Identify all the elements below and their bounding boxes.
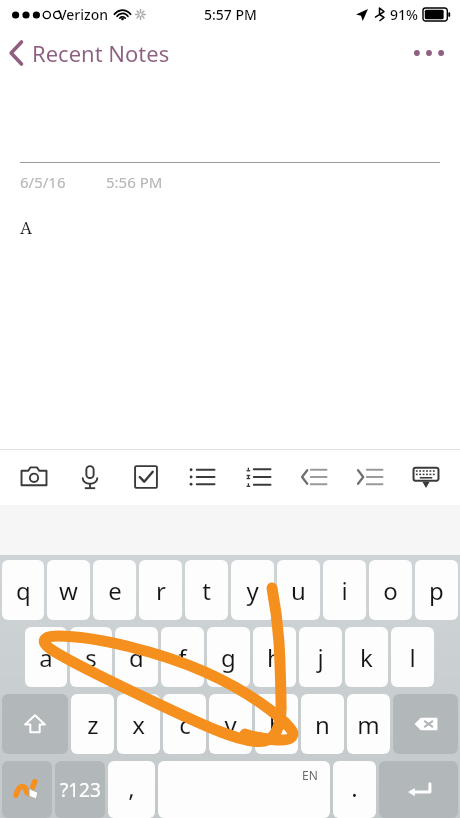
staticText: 5:57 PM: [204, 5, 257, 24]
button[interactable]: Numbered list: [238, 457, 278, 497]
button[interactable]: Handwriting: [2, 761, 52, 818]
button[interactable]: a: [25, 627, 67, 687]
button[interactable]: m: [347, 694, 390, 754]
button[interactable]: l: [391, 627, 434, 687]
button[interactable]: Hide keyboard: [406, 457, 446, 497]
button[interactable]: v: [209, 694, 252, 754]
staticText: b: [269, 708, 284, 741]
button[interactable]: c: [163, 694, 206, 754]
button[interactable]: z: [71, 694, 114, 754]
button[interactable]: h: [253, 627, 296, 687]
button[interactable]: Camera: [14, 457, 54, 497]
button[interactable]: Bulleted list: [182, 457, 222, 497]
staticText: a: [39, 641, 53, 674]
button[interactable]: p: [415, 560, 458, 620]
staticText: c: [179, 708, 191, 741]
staticText: .: [351, 771, 358, 804]
button[interactable]: d: [115, 627, 158, 687]
staticText: ,: [128, 771, 135, 804]
button[interactable]: t: [185, 560, 228, 620]
button[interactable]: k: [345, 627, 388, 687]
staticText: d: [129, 641, 144, 674]
staticText: p: [429, 574, 444, 607]
button[interactable]: Symbols: [55, 761, 105, 818]
button[interactable]: More options: [398, 36, 460, 70]
button[interactable]: ,: [108, 761, 155, 818]
button[interactable]: i: [323, 560, 366, 620]
staticText: q: [16, 574, 31, 607]
staticText: u: [291, 574, 306, 607]
staticText: r: [156, 574, 166, 607]
button[interactable]: Increase indent: [350, 457, 390, 497]
button[interactable]: f: [161, 627, 204, 687]
staticText: 5:56 PM: [106, 172, 163, 192]
staticText: t: [202, 574, 211, 607]
staticText: o: [383, 574, 398, 607]
button[interactable]: Space: [158, 761, 330, 818]
button[interactable]: e: [93, 560, 136, 620]
button[interactable]: w: [47, 560, 90, 620]
staticText: i: [341, 574, 348, 607]
button[interactable]: Shift: [2, 694, 68, 754]
staticText: j: [317, 641, 324, 674]
staticText: Recent Notes: [32, 38, 170, 68]
staticText: f: [178, 641, 187, 674]
button[interactable]: Checklist: [126, 457, 166, 497]
button[interactable]: x: [117, 694, 160, 754]
staticText: y: [246, 574, 259, 607]
button[interactable]: Voice note: [70, 457, 110, 497]
staticText: z: [87, 708, 99, 741]
staticText: x: [132, 708, 145, 741]
button[interactable]: o: [369, 560, 412, 620]
staticText: n: [315, 708, 330, 741]
staticText: A: [20, 216, 32, 239]
button[interactable]: Enter: [379, 761, 458, 818]
staticText: g: [221, 641, 236, 674]
button[interactable]: j: [299, 627, 342, 687]
button[interactable]: s: [70, 627, 112, 687]
staticText: 6/5/16: [20, 172, 66, 192]
button[interactable]: b: [255, 694, 298, 754]
button[interactable]: g: [207, 627, 250, 687]
button[interactable]: q: [2, 560, 44, 620]
staticText: w: [59, 574, 78, 607]
staticText: Verizon: [58, 5, 109, 24]
staticText: e: [108, 574, 122, 607]
staticText: s: [85, 641, 97, 674]
button[interactable]: Backspace: [393, 694, 458, 754]
button[interactable]: u: [277, 560, 320, 620]
button[interactable]: Recent Notes: [0, 32, 184, 74]
button[interactable]: .: [333, 761, 376, 818]
staticText: v: [224, 708, 237, 741]
staticText: 91%: [390, 5, 418, 24]
staticText: EN: [302, 767, 318, 783]
staticText: k: [360, 641, 373, 674]
button[interactable]: r: [139, 560, 182, 620]
staticText: h: [267, 641, 282, 674]
staticText: ?123: [60, 777, 101, 803]
staticText: m: [357, 708, 380, 741]
staticText: l: [409, 641, 416, 674]
button[interactable]: Decrease indent: [294, 457, 334, 497]
button[interactable]: y: [231, 560, 274, 620]
button[interactable]: n: [301, 694, 344, 754]
